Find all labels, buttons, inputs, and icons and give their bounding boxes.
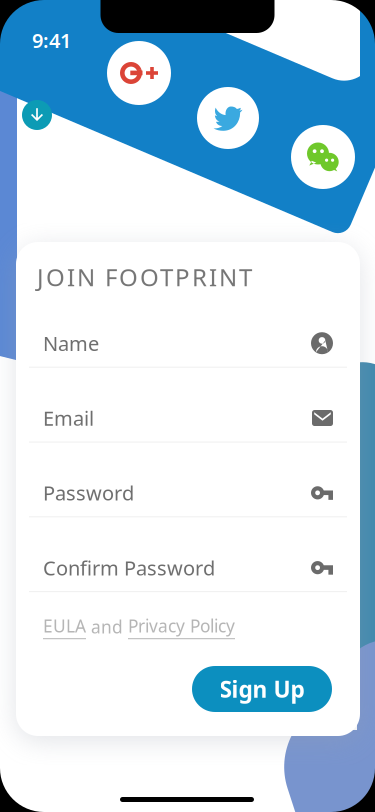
button[interactable]: Password [29,469,347,517]
staticText: Sign Up [219,674,304,704]
button[interactable]: Privacy Policy [128,614,235,639]
button[interactable]: EULA [43,614,86,639]
button[interactable]: Sign up with WeChat [291,125,355,189]
staticText: and [86,615,128,638]
button[interactable]: Name [29,320,347,368]
button[interactable]: Sign up with Google [107,41,171,105]
staticText: Privacy Policy [128,614,235,637]
staticText: Email [43,405,94,431]
button[interactable]: Download [22,100,52,130]
staticText: EULA [43,614,86,637]
button[interactable]: Confirm Password [29,544,347,592]
button[interactable]: Email [29,394,347,442]
staticText: Name [43,330,99,356]
button[interactable]: Sign Up [192,666,332,712]
button[interactable]: Sign up with Twitter [197,87,259,149]
staticText: Confirm Password [43,554,215,581]
staticText: JOIN FOOTPRINT [37,261,252,293]
staticText: Password [43,480,134,506]
staticText: 9:41 [32,27,71,54]
